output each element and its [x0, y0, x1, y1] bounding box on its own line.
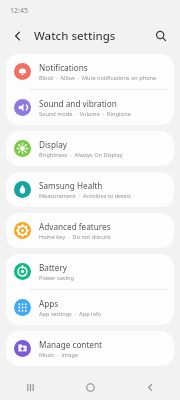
button[interactable]: Advanced features: [6, 213, 174, 248]
staticText: Brightness · Always On Display: [39, 151, 123, 159]
staticText: Manage content: [39, 339, 102, 350]
staticText: Measurement · Activities to detect: [39, 192, 132, 200]
staticText: Music · image: [39, 351, 79, 359]
staticText: App settings · App info: [39, 310, 102, 318]
button[interactable]: Manage content: [6, 331, 174, 366]
button[interactable]: Recent apps: [0, 374, 60, 400]
staticText: Display: [39, 139, 67, 150]
staticText: Power saving: [39, 274, 74, 282]
staticText: Sound and vibration: [39, 98, 117, 109]
button[interactable]: Battery: [6, 254, 174, 289]
staticText: Block · Allow · Mute notifications on ph…: [39, 74, 157, 82]
button[interactable]: Back: [120, 374, 180, 400]
button[interactable]: Notifications: [6, 54, 174, 89]
staticText: Sound mode · Volume · Ringtone: [39, 110, 131, 118]
staticText: Samsung Health: [39, 180, 103, 191]
button[interactable]: Home: [60, 374, 120, 400]
button[interactable]: Apps: [6, 290, 174, 325]
staticText: Advanced features: [39, 221, 111, 232]
button[interactable]: Back: [9, 27, 27, 45]
button[interactable]: Display: [6, 131, 174, 166]
button[interactable]: Search: [151, 26, 171, 46]
staticText: Apps: [39, 298, 59, 309]
button[interactable]: Sound and vibration: [6, 90, 174, 125]
staticText: Home key · Do not disturb: [39, 233, 111, 241]
button[interactable]: Samsung Health: [6, 172, 174, 207]
staticText: 12:45: [10, 6, 28, 16]
staticText: Notifications: [39, 62, 88, 73]
staticText: Battery: [39, 262, 68, 273]
staticText: Watch settings: [34, 28, 116, 44]
